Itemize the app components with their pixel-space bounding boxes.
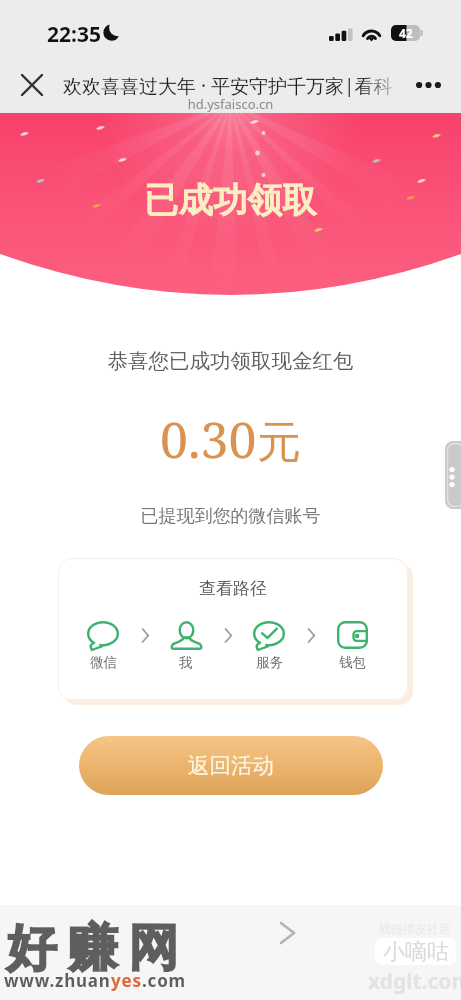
staticText: 已成功领取 [144, 179, 317, 222]
staticText: yes [111, 969, 142, 992]
staticText: 0.30 [160, 405, 257, 473]
staticText: 恭喜您已成功领取现金红包 [0, 348, 461, 374]
staticText: 查看路径 [58, 578, 408, 599]
staticText: 元 [257, 415, 301, 470]
staticText: 已提现到您的微信账号 [0, 505, 461, 528]
staticText: xdglt.com [368, 967, 461, 996]
button[interactable]: 返回活动 [79, 736, 383, 795]
staticText: 微信 [90, 654, 117, 671]
staticText: 42 [399, 25, 413, 41]
staticText: hd.ysfaisco.cn [0, 95, 461, 113]
button[interactable]: More options [406, 63, 450, 107]
staticText: www.zhuan [4, 969, 111, 992]
staticText: 返回活动 [188, 752, 274, 779]
staticText: 线报福友社区 [379, 921, 451, 936]
staticText: 小嘀咕 [383, 938, 449, 965]
button[interactable]: Menu [445, 441, 461, 509]
button[interactable]: 查看路径 [58, 558, 408, 700]
staticText: 22:35 [47, 20, 101, 49]
staticText: 欢欢喜喜过大年 · 平安守护千万家|看科普 [63, 73, 408, 97]
staticText: 我 [179, 654, 193, 671]
staticText: .com [142, 969, 186, 992]
staticText: 钱包 [339, 654, 366, 671]
button[interactable]: Close [12, 65, 52, 105]
staticText: 服务 [256, 654, 283, 671]
staticText: 好赚网 [1, 917, 184, 980]
